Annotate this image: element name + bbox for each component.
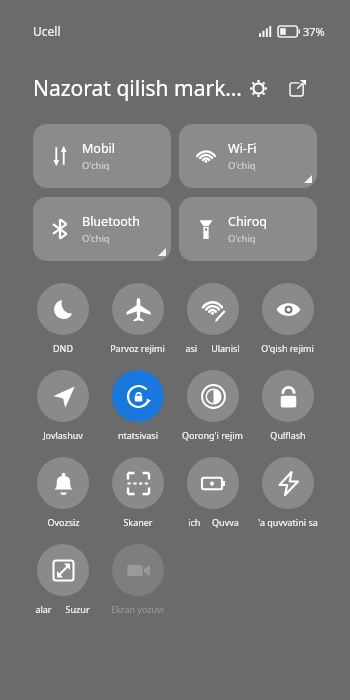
staticText: Parvoz rejimi: [110, 342, 165, 354]
staticText: O'chiq: [82, 232, 110, 245]
staticText: Ekran yozuvi: [111, 603, 164, 615]
staticText: Mobil internet: [82, 140, 165, 157]
staticText: Chiroq: [228, 213, 268, 230]
staticText: ich Quvva: [188, 516, 239, 528]
staticText: Jovlashuv: [43, 429, 83, 441]
staticText: 37%: [303, 24, 325, 39]
button[interactable]: Settings: [245, 75, 271, 101]
staticText: Ovozsiz: [47, 516, 80, 528]
staticText: ntatsivasi: [118, 429, 158, 441]
staticText: 'a quvvatini sa: [258, 516, 318, 528]
button[interactable]: Jovlashuv: [37, 370, 89, 441]
staticText: O'chiq: [228, 159, 256, 172]
staticText: Wi-Fi: [228, 140, 257, 157]
button[interactable]: DND: [37, 283, 89, 354]
staticText: asi Ulanisl: [185, 342, 240, 354]
button[interactable]: asi Ulanisl: [185, 283, 240, 354]
button[interactable]: Ovozsiz: [37, 457, 89, 528]
button[interactable]: Qulflash: [262, 370, 314, 441]
staticText: Bluetooth: [82, 213, 141, 230]
button[interactable]: Edit: [285, 75, 311, 101]
button[interactable]: Parvoz rejimi: [110, 283, 165, 354]
staticText: O'chiq: [82, 159, 110, 172]
staticText: alar Suzur: [35, 603, 90, 615]
button[interactable]: ntatsivasi: [112, 370, 164, 441]
button[interactable]: Bluetooth: [33, 197, 171, 261]
staticText: O'qish rejimi: [261, 342, 314, 354]
staticText: Ucell: [33, 23, 61, 39]
button[interactable]: Chiroq: [179, 197, 317, 261]
button[interactable]: ich Quvva: [187, 457, 239, 528]
button[interactable]: Mobil internet: [33, 124, 171, 188]
button[interactable]: Wi-Fi: [179, 124, 317, 188]
staticText: O'chiq: [228, 232, 256, 245]
button[interactable]: Skaner: [112, 457, 164, 528]
button[interactable]: alar Suzur: [35, 544, 90, 615]
staticText: Nazorat qilish mark…: [33, 74, 242, 103]
staticText: Qulflash: [270, 429, 306, 441]
staticText: Skaner: [123, 516, 153, 528]
button[interactable]: O'qish rejimi: [261, 283, 314, 354]
button[interactable]: 'a quvvatini sa: [258, 457, 318, 528]
button[interactable]: Ekran yozuvi: [111, 544, 164, 615]
button[interactable]: Qorong'i rejim: [182, 370, 243, 441]
staticText: Qorong'i rejim: [182, 429, 243, 441]
staticText: DND: [53, 342, 73, 354]
